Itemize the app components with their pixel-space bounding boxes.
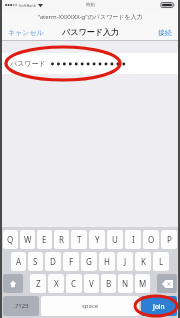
button[interactable]: パスワード	[2, 53, 178, 74]
staticText: T	[77, 234, 82, 245]
button[interactable]: T	[71, 230, 87, 249]
button[interactable]: S	[28, 252, 43, 271]
staticText: space	[82, 302, 99, 310]
staticText: K	[141, 256, 146, 267]
button[interactable]: Backspace	[157, 274, 177, 293]
staticText: パスワード	[10, 59, 46, 68]
button[interactable]: N	[118, 274, 133, 293]
button[interactable]: R	[54, 230, 69, 249]
button[interactable]: Join	[141, 296, 177, 316]
staticText: C	[71, 278, 77, 289]
staticText: J	[124, 256, 127, 267]
button[interactable]: E	[37, 230, 52, 249]
staticText: W	[24, 234, 32, 245]
staticText: .?123	[14, 302, 29, 310]
button[interactable]: C	[66, 274, 82, 293]
button[interactable]: D	[45, 252, 61, 271]
staticText: Z	[36, 278, 41, 289]
button[interactable]: space	[41, 296, 139, 316]
staticText: O	[148, 234, 155, 245]
staticText: D	[50, 256, 56, 267]
staticText: 時刻	[86, 2, 95, 8]
staticText: キャンセル	[8, 28, 44, 37]
button[interactable]: P	[161, 230, 177, 249]
staticText: B	[106, 278, 112, 289]
button[interactable]: W	[20, 230, 35, 249]
staticText: A	[16, 256, 22, 267]
staticText: V	[89, 278, 94, 289]
button[interactable]: Y	[89, 230, 105, 249]
button[interactable]: X	[48, 274, 64, 293]
staticText: SoftBank	[19, 3, 36, 8]
staticText: I	[132, 234, 135, 245]
button[interactable]: キャンセル	[2, 24, 50, 40]
button[interactable]: G	[81, 252, 97, 271]
staticText: S	[33, 256, 38, 267]
staticText: Y	[95, 234, 100, 245]
button[interactable]: I	[125, 230, 141, 249]
button[interactable]: 接続	[152, 24, 178, 40]
staticText: L	[159, 256, 164, 267]
button[interactable]: F	[63, 252, 79, 271]
button[interactable]: U	[107, 230, 123, 249]
button[interactable]: Z	[30, 274, 46, 293]
staticText: Join	[153, 302, 165, 311]
staticText: N	[122, 278, 129, 289]
staticText: 接続	[158, 28, 172, 37]
staticText: Q	[7, 234, 14, 245]
staticText: F	[69, 256, 74, 267]
staticText: U	[112, 234, 118, 245]
button[interactable]: O	[143, 230, 159, 249]
staticText: E	[42, 234, 47, 245]
staticText: R	[59, 234, 64, 245]
button[interactable]: Shift	[3, 274, 23, 293]
button[interactable]: .?123	[3, 296, 39, 316]
button[interactable]: K	[135, 252, 151, 271]
button[interactable]: A	[11, 252, 26, 271]
button[interactable]: M	[135, 274, 150, 293]
button[interactable]: Q	[3, 230, 18, 249]
staticText: "aterm-XXXXXX-g"のパスワードを入力	[37, 13, 143, 21]
staticText: P	[167, 234, 172, 245]
staticText: パスワード入力	[62, 27, 119, 37]
staticText: H	[104, 256, 110, 267]
button[interactable]: B	[101, 274, 116, 293]
button[interactable]: J	[117, 252, 133, 271]
staticText: G	[86, 256, 92, 267]
button[interactable]: V	[84, 274, 99, 293]
staticText: X	[54, 278, 59, 289]
button[interactable]: H	[99, 252, 115, 271]
staticText: M	[139, 278, 147, 289]
button[interactable]: L	[153, 252, 169, 271]
